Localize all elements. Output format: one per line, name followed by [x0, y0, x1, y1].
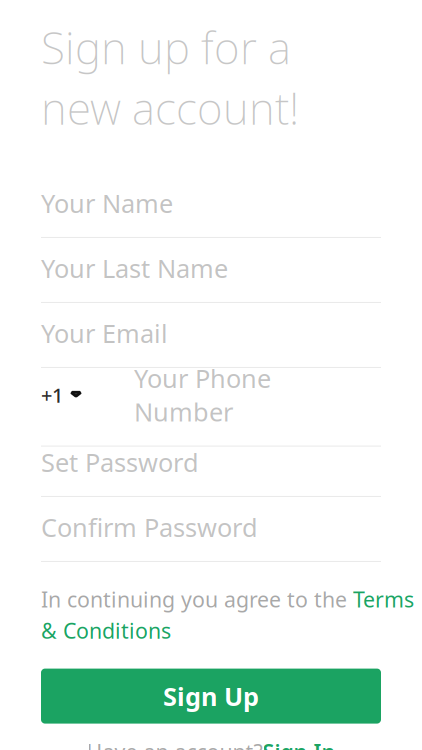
button[interactable]: Country code +1: [41, 368, 381, 432]
button[interactable]: Confirm Password: [41, 497, 381, 562]
button[interactable]: Set Password: [41, 432, 381, 497]
staticText: new account!: [41, 78, 299, 137]
button[interactable]: Your Name: [41, 173, 381, 238]
staticText: Sign Up: [163, 679, 259, 713]
staticText: Your Email: [41, 316, 168, 350]
staticText: Set Password: [41, 445, 199, 479]
button[interactable]: Your Last Name: [41, 238, 381, 303]
staticText: Your Last Name: [41, 251, 228, 285]
button[interactable]: Have an account?: [0, 732, 422, 750]
button[interactable]: Your Email: [41, 303, 381, 368]
staticText: Sign In: [262, 738, 335, 750]
button[interactable]: & Conditions: [41, 616, 171, 645]
staticText: Your Phone Number: [134, 361, 271, 429]
staticText: Your Name: [41, 186, 173, 220]
staticText: +1: [41, 382, 63, 408]
staticText: Sign up for a: [41, 18, 291, 76]
staticText: & Conditions: [41, 616, 171, 645]
staticText: In continuing you agree to the: [41, 585, 353, 613]
button[interactable]: Terms: [353, 585, 414, 613]
staticText: Confirm Password: [41, 510, 258, 544]
staticText: Have an account?: [86, 738, 262, 750]
button[interactable]: Sign Up: [41, 669, 381, 724]
staticText: Terms: [353, 585, 414, 613]
